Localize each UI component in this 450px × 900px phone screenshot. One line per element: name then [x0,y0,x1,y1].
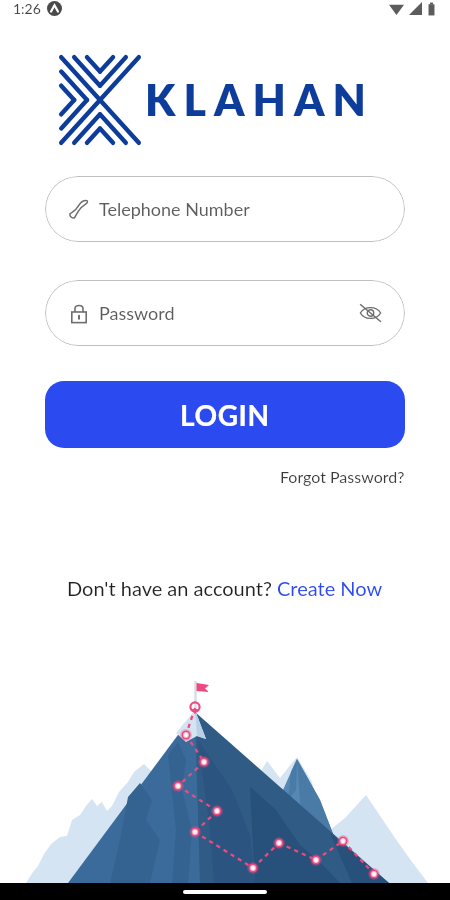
staticText: Forgot Password? [280,467,405,486]
staticText: Password [99,302,175,324]
button[interactable]: Create Now [277,576,383,600]
button[interactable]: Password [45,280,405,346]
staticText: Don't have an account? [67,576,277,600]
button[interactable]: LOGIN [45,381,405,448]
button[interactable]: Forgot Password? [280,467,450,486]
staticText: 1:26 [13,0,41,17]
button[interactable]: Telephone Number [45,176,405,242]
staticText: Telephone Number [99,198,250,220]
staticText: KLAHAN [145,74,374,126]
staticText: LOGIN [180,398,270,432]
button[interactable]: Show password [359,303,382,323]
staticText: Create Now [277,576,383,600]
